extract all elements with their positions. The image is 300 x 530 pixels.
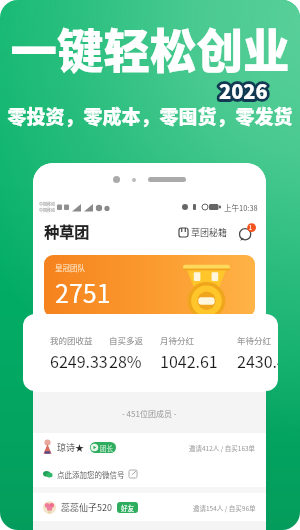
staticText: 种草团 (44, 221, 90, 243)
button[interactable]: 月待分红 (160, 334, 218, 372)
staticText: 6249.33 (50, 349, 108, 372)
button[interactable]: 皇冠团队 (44, 255, 255, 317)
staticText: 皇冠团队 (55, 262, 85, 273)
staticText: 中国移动 (39, 207, 55, 213)
button[interactable]: 琼诗★ (43, 433, 256, 461)
staticText: 上午10:38 (224, 202, 258, 213)
staticText: 邀请154人 / 自买96单 (193, 503, 256, 512)
button[interactable]: 我的团收益 (50, 334, 108, 372)
staticText: 月待分红 (160, 334, 195, 346)
staticText: 点此添加您的微信号 (57, 469, 125, 480)
button[interactable]: 团长 (90, 442, 116, 453)
staticText: 2751 (55, 274, 111, 310)
staticText: 蕊蕊仙子520 (61, 501, 112, 514)
staticText: 我的团收益 (50, 334, 93, 346)
staticText: 草团秘籍 (191, 226, 228, 239)
button[interactable]: 自买多返 (109, 334, 144, 372)
staticText: 琼诗★ (57, 441, 85, 454)
button[interactable]: 蕊蕊仙子520 (43, 493, 256, 521)
staticText: 邀请412人 / 自买163单 (189, 443, 256, 452)
staticText: 团长 (100, 443, 113, 452)
staticText: 一键轻松创业 (0, 14, 300, 81)
staticText: 2430.44 (237, 349, 278, 372)
staticText: 1042.61 (160, 349, 218, 372)
button[interactable]: 点此添加您的微信号 (43, 461, 256, 487)
staticText: 好友 (121, 503, 134, 512)
staticText: 年待分红 (237, 334, 272, 346)
staticText: 自买多返 (109, 334, 144, 346)
staticText: 2026 (219, 76, 268, 105)
staticText: 28% (109, 349, 142, 372)
staticText: 零投资，零成本，零囤货，零发货 (0, 102, 300, 130)
button[interactable]: Messages (238, 224, 255, 241)
staticText: 中国移动 (39, 201, 55, 207)
staticText: 2026 (219, 76, 268, 105)
staticText: 1 (249, 224, 253, 232)
button[interactable]: 年待分红 (237, 334, 278, 372)
staticText: - 451位团成员 - (122, 408, 177, 420)
button[interactable]: 草团秘籍 (177, 222, 230, 243)
